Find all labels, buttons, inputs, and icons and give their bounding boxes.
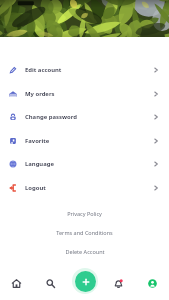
button[interactable]: Home (0, 266, 33, 300)
staticText: Language (25, 160, 54, 168)
button[interactable]: Profile (135, 266, 169, 300)
staticText: My orders (25, 90, 55, 98)
button[interactable]: Language (0, 154, 169, 174)
button[interactable]: Add (72, 268, 98, 294)
button[interactable]: Privacy Policy (0, 205, 169, 221)
button[interactable]: Logout (0, 178, 169, 198)
button[interactable]: Change password (0, 107, 169, 127)
button[interactable]: Favorite (0, 131, 169, 151)
staticText: Logout (25, 184, 46, 192)
staticText: Change password (25, 113, 77, 121)
button[interactable]: Edit account (0, 60, 169, 80)
button[interactable]: Delete Account (0, 243, 169, 259)
button[interactable]: Terms and Conditions (0, 224, 169, 240)
button[interactable]: Notifications (101, 266, 135, 300)
staticText: Privacy Policy (67, 210, 102, 217)
button[interactable]: My orders (0, 84, 169, 104)
staticText: Delete Account (65, 248, 105, 255)
staticText: Favorite (25, 137, 50, 145)
staticText: Edit account (25, 66, 62, 74)
staticText: Terms and Conditions (56, 229, 113, 236)
button[interactable]: Search (33, 266, 67, 300)
